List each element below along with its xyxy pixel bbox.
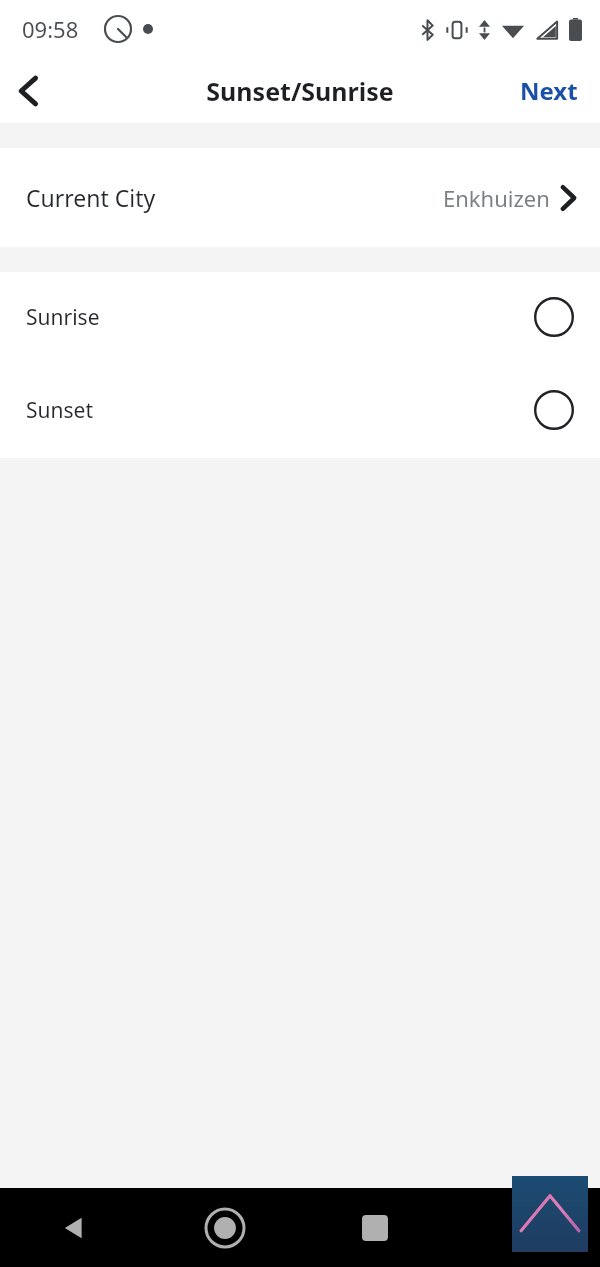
staticText: Sunset bbox=[26, 396, 93, 425]
staticText: Current City bbox=[26, 182, 156, 213]
staticText: Enkhuizen bbox=[443, 183, 550, 213]
staticText: Sunset/Sunrise bbox=[206, 74, 394, 108]
button[interactable]: Home bbox=[150, 1188, 300, 1267]
staticText: Next bbox=[520, 74, 578, 107]
button[interactable]: Sunrise bbox=[0, 272, 600, 362]
button[interactable]: Next bbox=[498, 58, 600, 123]
button[interactable]: Back bbox=[0, 63, 56, 119]
staticText: Sunrise bbox=[26, 303, 100, 332]
button[interactable]: Current City bbox=[0, 148, 600, 247]
button[interactable]: Sunset bbox=[0, 362, 600, 458]
button[interactable]: Recents bbox=[300, 1188, 450, 1267]
staticText: 09:58 bbox=[22, 14, 79, 44]
button[interactable]: Back bbox=[0, 1188, 150, 1267]
